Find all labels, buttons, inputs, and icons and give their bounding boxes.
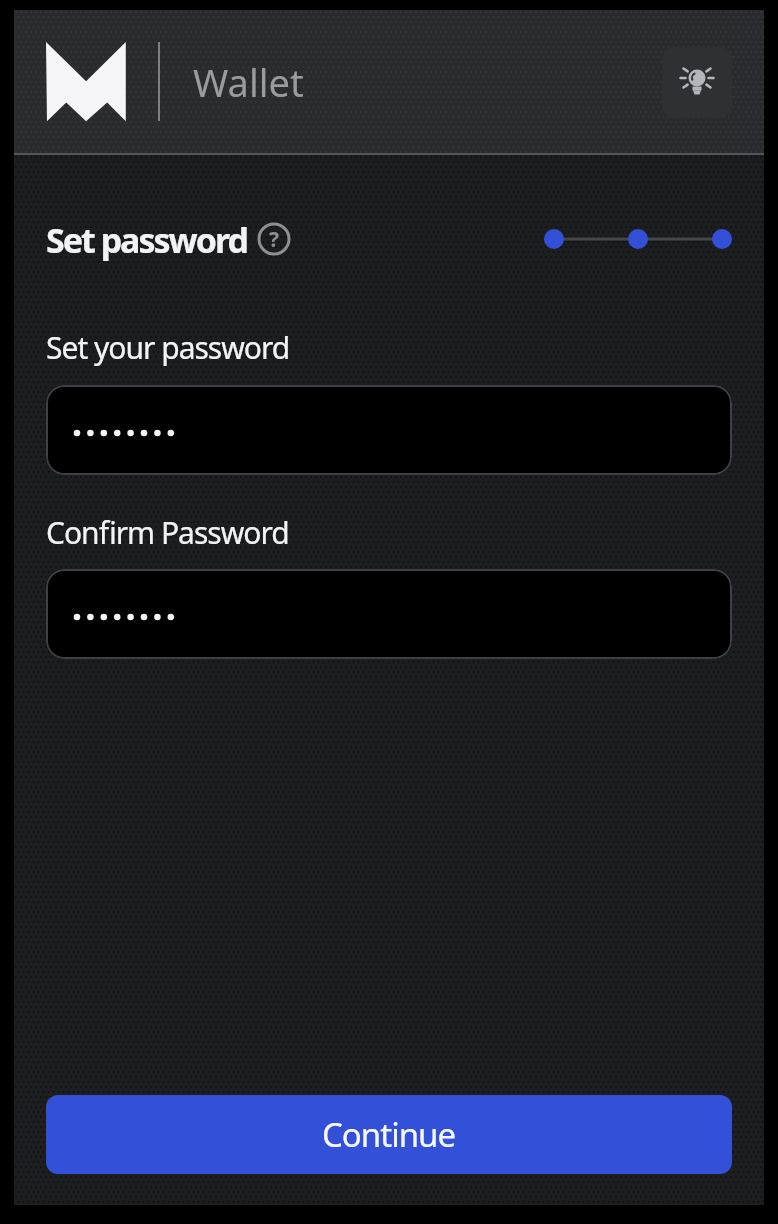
button[interactable] — [662, 47, 732, 117]
staticText: Set your password — [46, 327, 290, 368]
button[interactable]: ? — [257, 222, 291, 256]
staticText: Confirm Password — [46, 512, 289, 553]
staticText: Set password — [46, 217, 247, 261]
button[interactable] — [46, 385, 732, 475]
staticText: Wallet — [193, 56, 304, 108]
button[interactable]: Continue — [46, 1095, 732, 1174]
staticText: Continue — [322, 1112, 456, 1157]
staticText: ? — [269, 225, 280, 254]
button[interactable] — [46, 569, 732, 659]
